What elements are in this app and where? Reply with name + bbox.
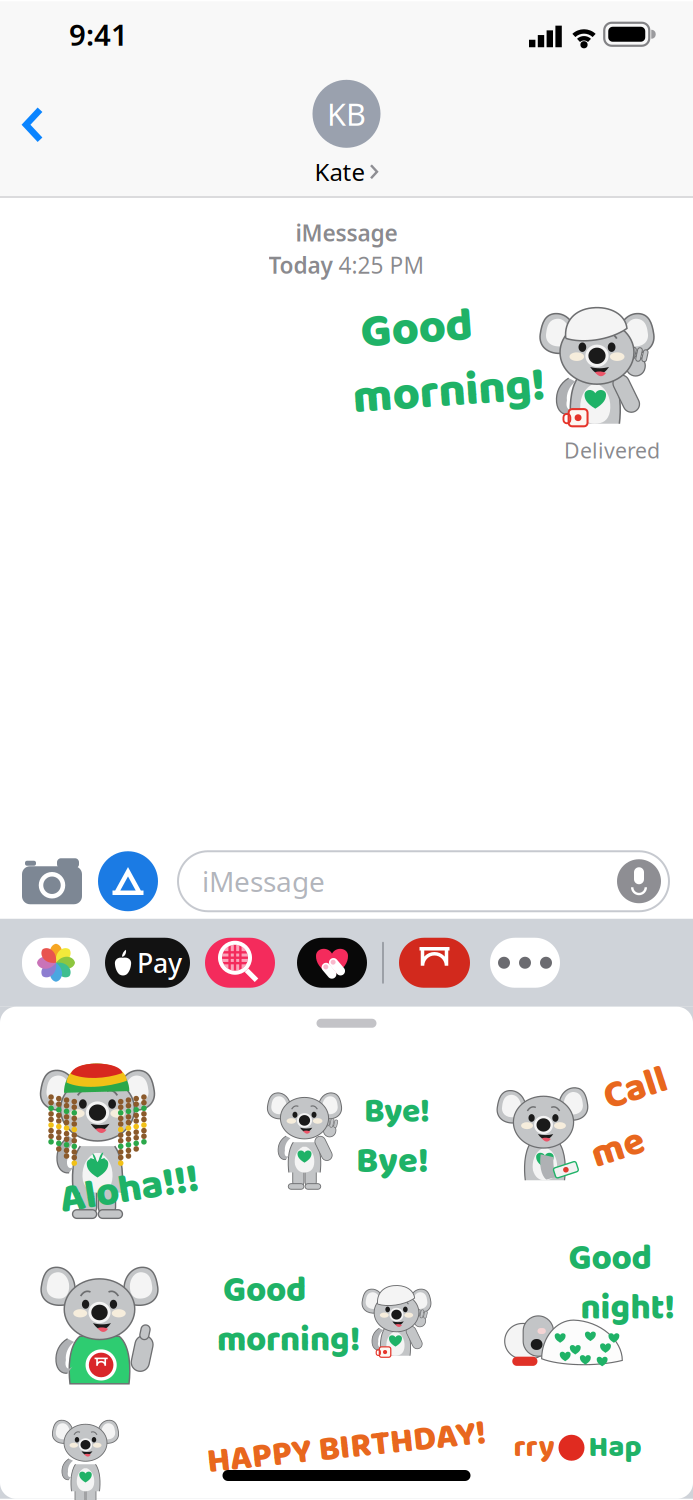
staticText: Bye! xyxy=(356,1133,429,1190)
button[interactable]: Koala stickers xyxy=(399,938,470,988)
staticText: Good xyxy=(223,1263,306,1319)
button[interactable]: Photos xyxy=(22,938,90,988)
button[interactable]: Apps xyxy=(98,851,178,911)
staticText: Delivered xyxy=(564,436,660,464)
staticText: me xyxy=(591,1118,645,1180)
button[interactable]: Happy birthday sticker xyxy=(231,1412,462,1484)
button[interactable]: Call me sticker xyxy=(462,1028,693,1220)
staticText: 4:25 PM xyxy=(338,250,424,280)
button[interactable]: Apple Pay xyxy=(90,938,190,988)
staticText: Hap xyxy=(588,1424,641,1471)
staticText: HAPPY BIRTHDAY! xyxy=(206,1420,486,1475)
button[interactable]: Sticker xyxy=(0,1412,231,1484)
staticText: Good xyxy=(360,292,472,367)
button[interactable]: Camera xyxy=(0,858,98,904)
staticText: rry xyxy=(513,1424,554,1471)
button[interactable]: Images xyxy=(190,938,275,988)
button[interactable]: Good morning sticker xyxy=(231,1220,462,1412)
button[interactable]: Digital Touch xyxy=(275,938,367,988)
button[interactable]: KB xyxy=(312,76,380,188)
staticText: Aloha!!! xyxy=(59,1158,199,1222)
staticText: KB xyxy=(327,93,366,134)
button[interactable]: More xyxy=(470,938,560,988)
staticText: Today xyxy=(268,250,332,280)
staticText: morning! xyxy=(217,1313,360,1368)
button[interactable]: Aloha sticker xyxy=(0,1028,231,1220)
staticText: iMessage xyxy=(295,218,397,248)
button[interactable]: Bye sticker xyxy=(231,1028,462,1220)
button[interactable]: Good night sticker xyxy=(462,1220,693,1412)
staticText: night! xyxy=(580,1281,674,1336)
staticText: morning! xyxy=(352,355,545,430)
staticText: Pay xyxy=(137,945,182,980)
staticText: 9:41 xyxy=(69,15,128,54)
staticText: Kate xyxy=(314,156,365,188)
button[interactable]: Merry sticker xyxy=(462,1412,693,1484)
staticText: Good xyxy=(568,1231,651,1287)
staticText: iMessage xyxy=(202,863,325,900)
staticText: Bye! xyxy=(364,1085,430,1139)
button[interactable]: Message field xyxy=(178,851,693,911)
button[interactable]: Back xyxy=(0,85,74,179)
staticText: Call xyxy=(603,1058,668,1120)
button[interactable]: Go U sticker xyxy=(0,1220,231,1412)
